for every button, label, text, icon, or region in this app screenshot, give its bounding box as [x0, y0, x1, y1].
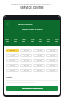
staticText: 17 [47, 40, 50, 43]
staticText: 11:00 [10, 54, 15, 57]
button[interactable]: 11:00 [6, 54, 19, 57]
button[interactable]: 09:30 [20, 49, 32, 52]
staticText: 14 [22, 40, 25, 43]
button[interactable]: SUN [54, 38, 59, 43]
button[interactable]: MON [5, 38, 10, 43]
button[interactable]: 11:30 [20, 54, 32, 57]
button[interactable]: 03:00 [6, 64, 19, 67]
staticText: 04:00 [37, 64, 42, 67]
button[interactable]: 12:30 [46, 54, 58, 57]
staticText: 05:30 [24, 69, 29, 72]
button[interactable]: 02:00 [33, 59, 45, 62]
button[interactable]: Back [6, 22, 9, 25]
button[interactable]: 05:30 [20, 69, 32, 72]
button[interactable]: 10:30 [46, 49, 58, 52]
button[interactable]: WED [21, 38, 26, 43]
staticText: 18 [55, 40, 58, 43]
button[interactable]: CONFIRM BOOKING [6, 86, 58, 91]
staticText: 13 [14, 40, 17, 43]
button[interactable]: 09:00 [6, 49, 19, 52]
staticText: Notes [6, 76, 13, 79]
staticText: CONFIRM BOOKING [22, 87, 43, 90]
button[interactable]: THU [30, 38, 35, 43]
staticText: FRI [39, 38, 42, 40]
staticText: Select Date & Time [22, 28, 43, 31]
staticText: 04:30 [50, 64, 55, 67]
button[interactable]: 03:30 [20, 64, 32, 67]
staticText: 12:30 [50, 54, 55, 57]
staticText: 10:30 [50, 49, 55, 52]
staticText: MON [5, 38, 10, 40]
staticText: 10:00 [37, 49, 42, 52]
button[interactable]: 01:30 [20, 59, 32, 62]
staticText: 11:30 [24, 54, 29, 57]
button[interactable]: 12:00 [33, 54, 45, 57]
staticText: 15 [31, 40, 34, 43]
staticText: 01:30 [24, 59, 29, 62]
button[interactable]: 01:00 [6, 59, 19, 62]
button[interactable]: FRI [38, 38, 43, 43]
button[interactable]: 06:00 [33, 69, 45, 72]
staticText: TUE [14, 38, 18, 40]
staticText: 01:00 [10, 59, 15, 62]
button[interactable]: 10:00 [33, 49, 45, 52]
button[interactable]: 06:30 [46, 69, 58, 72]
staticText: 03:30 [24, 64, 29, 67]
staticText: 02:30 [50, 59, 55, 62]
staticText: SERVICE CENTRE [20, 6, 44, 10]
staticText: WED [22, 38, 26, 40]
staticText: 12 [6, 40, 9, 43]
button[interactable]: SAT [46, 38, 51, 43]
staticText: SAT [47, 38, 50, 40]
staticText: 12:00 [37, 54, 42, 57]
staticText: 03:00 [10, 64, 15, 67]
staticText: SUN [55, 38, 59, 40]
staticText: 02:00 [37, 59, 42, 62]
staticText: 06:30 [50, 69, 55, 72]
staticText: BOOK YOUR SERVICE SLOT ONLINE · [11, 2, 53, 5]
staticText: Book Service [18, 22, 33, 25]
button[interactable]: 04:00 [33, 64, 45, 67]
button[interactable]: 05:00 [6, 69, 19, 72]
staticText: 05:00 [10, 69, 15, 72]
button[interactable]: TUE [13, 38, 18, 43]
staticText: THU [31, 38, 35, 40]
button[interactable]: 04:30 [46, 64, 58, 67]
staticText: 09:30 [24, 49, 29, 52]
staticText: 09:00 [10, 49, 15, 52]
staticText: 06:00 [37, 69, 42, 72]
staticText: 16 [39, 40, 42, 43]
button[interactable]: 02:30 [46, 59, 58, 62]
